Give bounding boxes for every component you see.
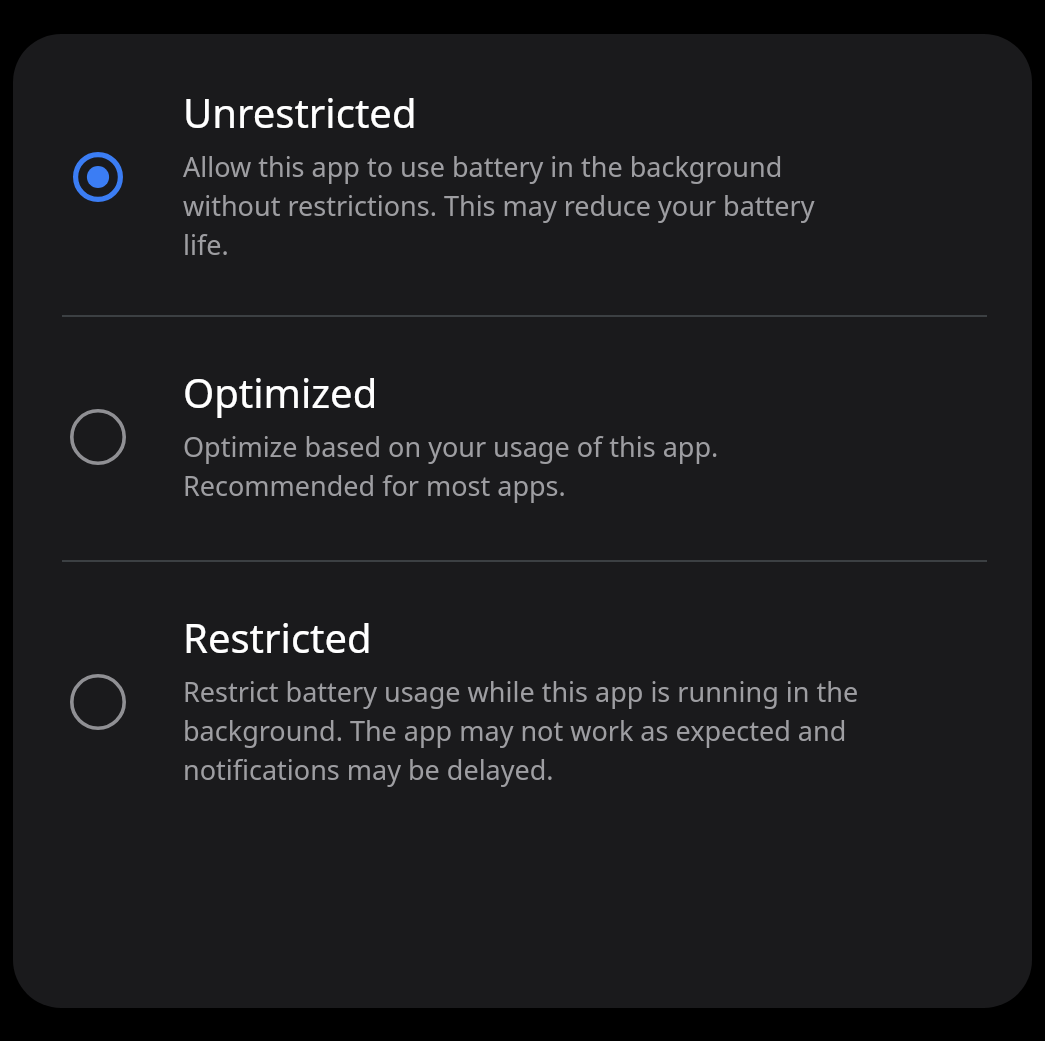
- other: Restricted: [68, 672, 128, 732]
- button[interactable]: Unrestricted selected: [13, 34, 1032, 315]
- staticText: Allow this app to use battery in the bac…: [183, 146, 863, 263]
- staticText: Unrestricted: [183, 90, 417, 138]
- staticText: Optimize based on your usage of this app…: [183, 426, 863, 504]
- other: Unrestricted selected: [68, 147, 128, 207]
- staticText: Restricted: [183, 615, 372, 663]
- staticText: Restrict battery usage while this app is…: [183, 671, 863, 788]
- button[interactable]: Optimized: [13, 317, 1032, 560]
- other: Optimized: [68, 407, 128, 467]
- staticText: Optimized: [183, 370, 378, 418]
- button[interactable]: Restricted: [13, 562, 1032, 838]
